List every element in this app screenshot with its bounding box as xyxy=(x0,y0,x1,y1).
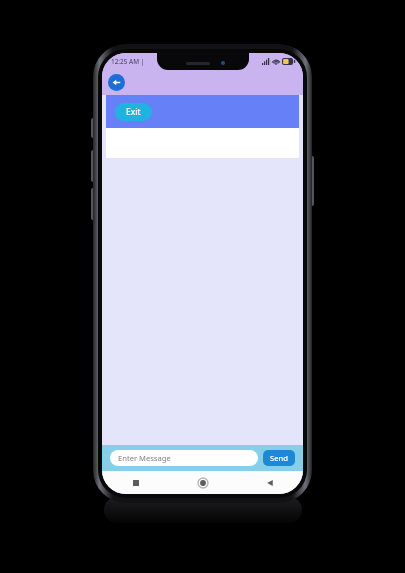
button[interactable]: Back xyxy=(108,74,125,91)
button[interactable]: Recent apps xyxy=(102,471,169,494)
button[interactable]: Back xyxy=(236,471,303,494)
button[interactable]: Exit xyxy=(115,103,152,121)
staticText: Enter Message xyxy=(118,453,171,463)
staticText: 12:25 AM | xyxy=(111,57,145,66)
button[interactable]: Enter Message xyxy=(110,450,258,466)
staticText: Send xyxy=(270,453,288,463)
button[interactable]: Home xyxy=(169,471,236,494)
button[interactable]: Send xyxy=(263,450,295,466)
staticText: Exit xyxy=(126,106,141,118)
